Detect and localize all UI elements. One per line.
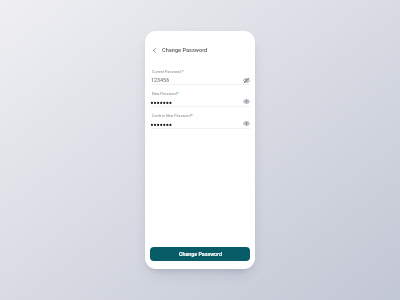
staticText: * <box>177 92 179 96</box>
button[interactable]: Toggle password visibility <box>242 76 250 84</box>
staticText: Confirm New Password <box>152 114 191 118</box>
staticText: * <box>182 70 184 74</box>
button[interactable]: Toggle password visibility <box>242 119 250 127</box>
staticText: New Password <box>152 92 177 96</box>
staticText: 123456 <box>151 77 170 83</box>
button[interactable]: Back <box>150 44 162 56</box>
button[interactable]: Change Password <box>150 247 250 261</box>
button[interactable]: Toggle password visibility <box>242 97 250 105</box>
staticText: * <box>191 114 193 118</box>
staticText: Current Password <box>152 70 182 74</box>
staticText: Change Password <box>179 251 222 257</box>
staticText: Change Password <box>162 47 208 54</box>
